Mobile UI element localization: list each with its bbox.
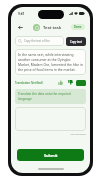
staticText: Translation (Verified) [15,81,43,85]
button[interactable]: Demo [71,24,85,30]
button[interactable]: Thumbs down [67,79,74,86]
button[interactable]: Verified [76,80,86,86]
staticText: Translate the data onto the required lan… [18,92,83,101]
button[interactable]: Copy text [66,37,86,46]
staticText: Demo [74,25,82,29]
staticText: In the same vein, while interviewing ano… [18,52,83,72]
staticText: Text task [43,25,62,31]
button[interactable] [15,107,86,131]
button[interactable]: Thumbs up [57,79,64,86]
staticText: Copy text [70,40,82,44]
button[interactable]: Translate the data onto the required lan… [15,89,86,104]
button[interactable]: In the same vein, while interviewing ano… [15,49,86,75]
button[interactable]: Submit [17,149,84,161]
button[interactable]: Copy the text of the [15,36,64,46]
staticText: Submit [44,153,58,158]
button[interactable]: Text task [33,24,62,31]
staticText: Copy the text of the [24,39,50,43]
staticText: 9:41 [18,12,25,16]
staticText: add translation [15,133,86,136]
button[interactable]: Back [16,23,25,32]
